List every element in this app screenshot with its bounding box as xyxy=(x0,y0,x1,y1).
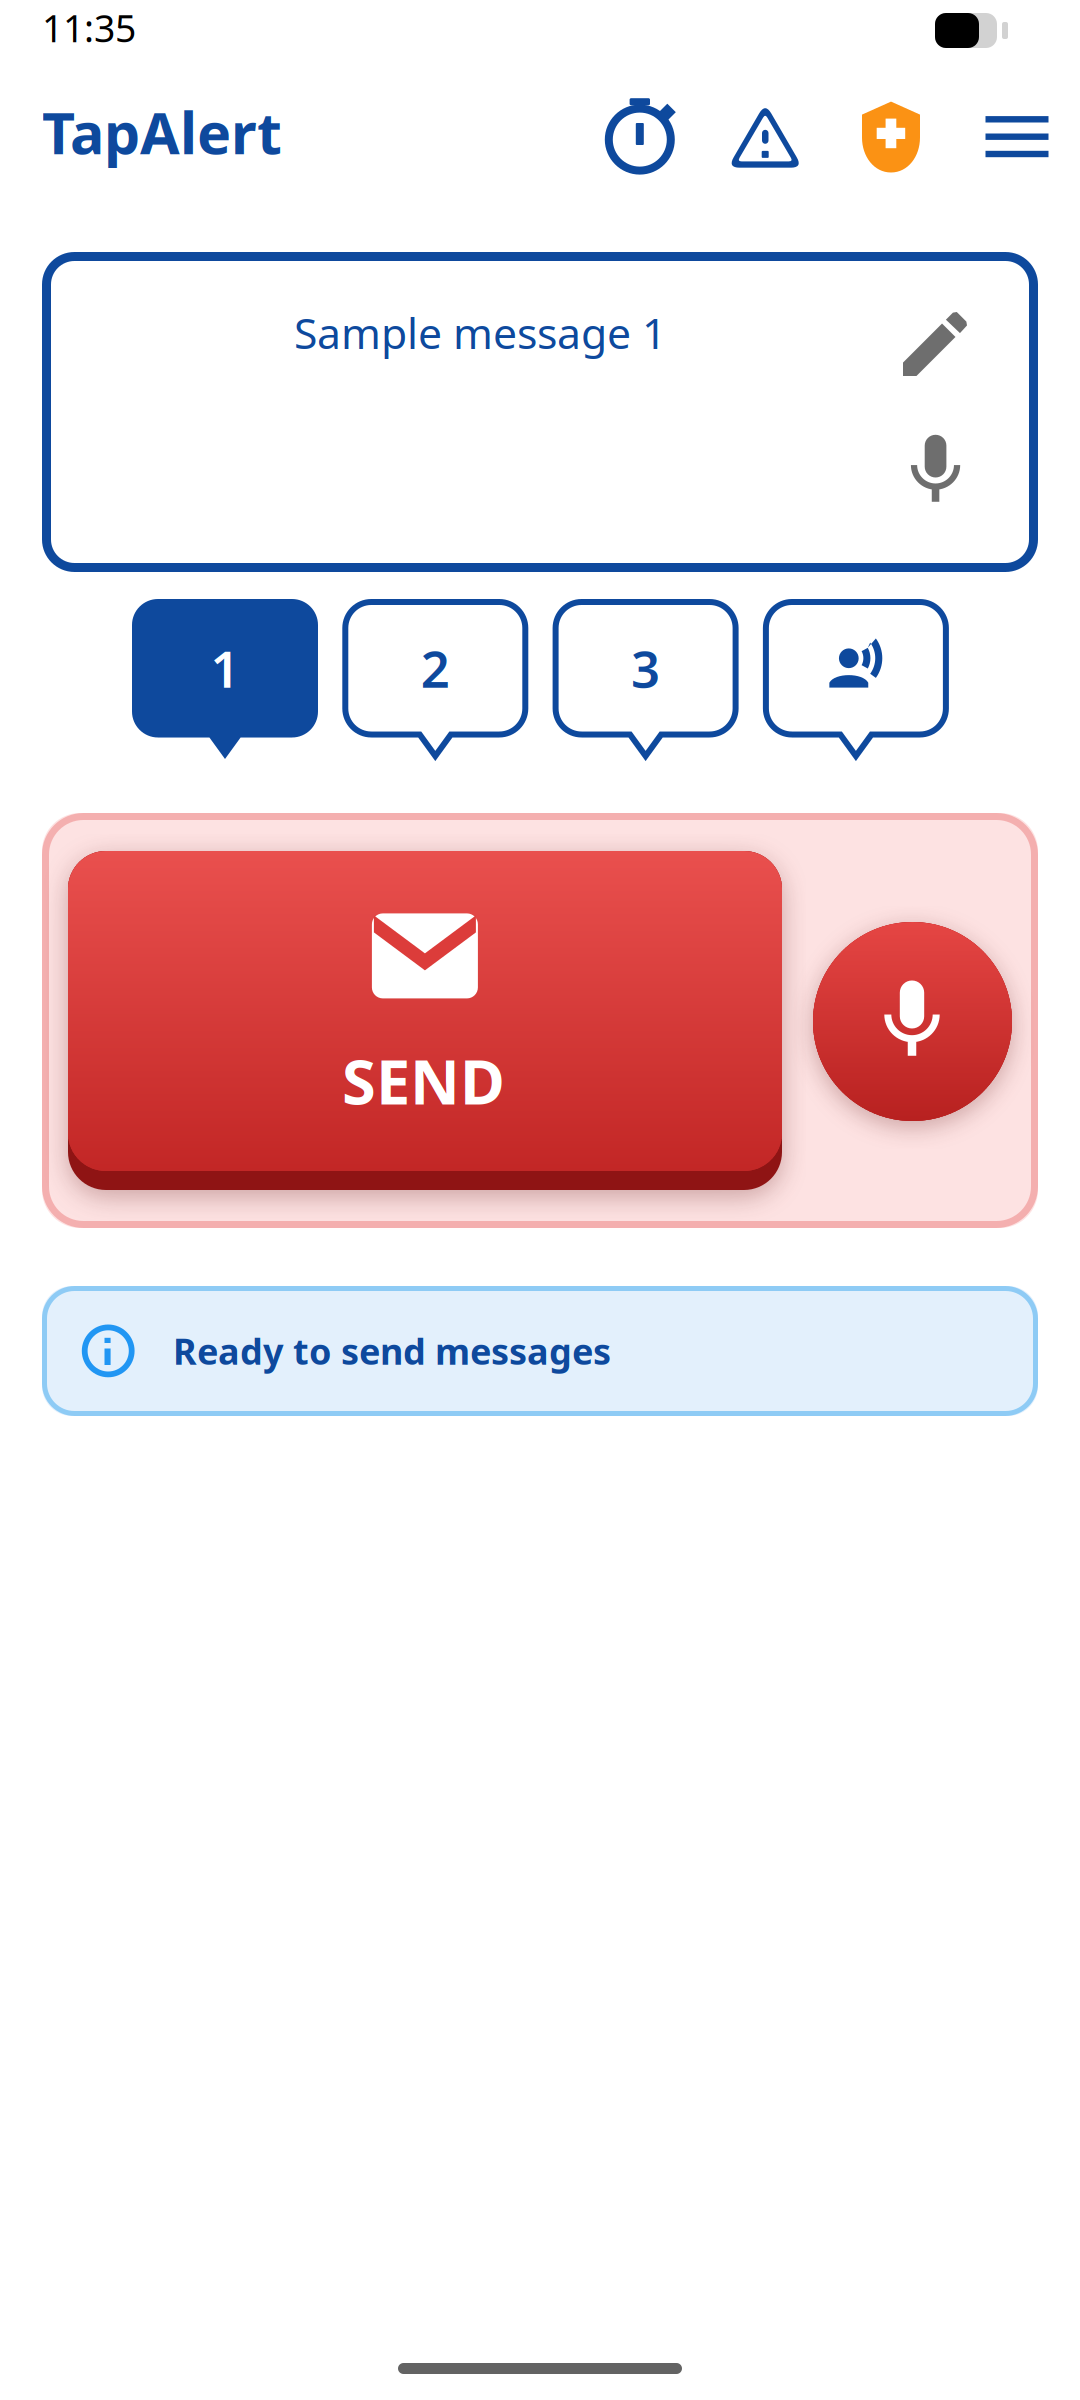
button[interactable]: SEND xyxy=(68,851,782,1190)
staticText: Ready to send messages xyxy=(173,1327,611,1375)
button[interactable]: Voice message xyxy=(813,922,1012,1121)
button[interactable]: Contacts xyxy=(763,599,949,759)
staticText: 1 xyxy=(210,634,239,702)
button[interactable]: Safety xyxy=(852,95,930,185)
button[interactable]: Menu xyxy=(978,95,1056,185)
button[interactable]: Message 1 xyxy=(132,599,318,759)
staticText: 2 xyxy=(421,634,450,702)
button[interactable]: Message 3 xyxy=(553,599,739,759)
button[interactable]: Alerts xyxy=(726,95,804,185)
button[interactable]: TapAlert xyxy=(42,94,282,170)
button[interactable]: Message 2 xyxy=(342,599,528,759)
staticText: 3 xyxy=(631,634,660,702)
button[interactable]: Sample message 1 xyxy=(42,252,1038,572)
staticText: Sample message 1 xyxy=(294,304,666,361)
button[interactable]: Timer xyxy=(600,95,678,185)
staticText: 11:35 xyxy=(42,3,136,53)
staticText: SEND xyxy=(342,1040,505,1121)
staticText: TapAlert xyxy=(42,94,282,170)
